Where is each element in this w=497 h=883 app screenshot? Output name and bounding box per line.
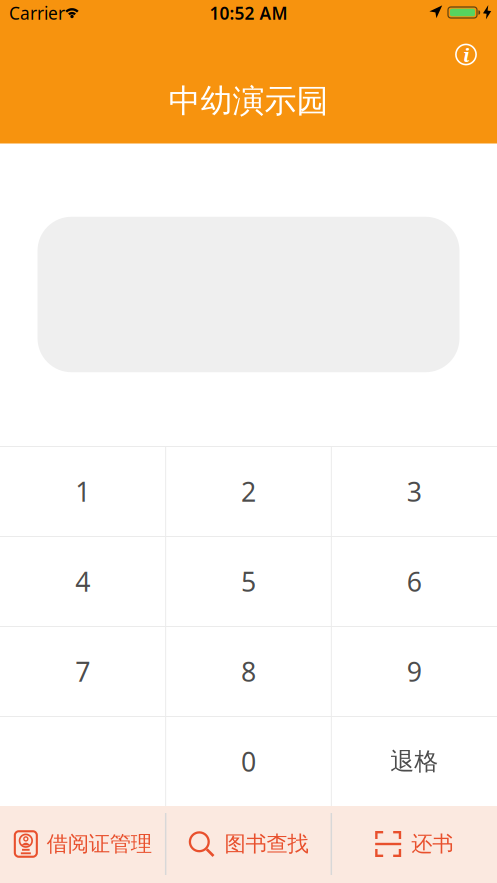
staticText: 6 — [407, 564, 422, 599]
button[interactable]: 1 — [0, 446, 166, 536]
button[interactable]: 7 — [0, 626, 166, 716]
staticText: 9 — [407, 654, 422, 689]
button[interactable]: 6 — [331, 536, 497, 626]
button[interactable]: 4 — [0, 536, 166, 626]
button[interactable]: 退格 — [331, 716, 497, 806]
staticText: 3 — [407, 474, 422, 509]
button[interactable]: 9 — [331, 626, 497, 716]
staticText: 2 — [241, 474, 256, 509]
button[interactable]: 还书 — [332, 805, 496, 882]
staticText: 借阅证管理 — [47, 831, 152, 857]
staticText: 10:52 AM — [209, 1, 287, 24]
button[interactable]: 5 — [166, 536, 331, 626]
staticText: 0 — [241, 744, 256, 779]
staticText: Carrier — [9, 1, 65, 24]
button[interactable]: 借阅证管理 — [1, 805, 165, 882]
staticText: 退格 — [390, 747, 438, 776]
button[interactable]: 8 — [166, 626, 331, 716]
button[interactable]: 图书查找 — [167, 805, 330, 882]
staticText: 5 — [241, 564, 256, 599]
staticText: 还书 — [411, 831, 453, 857]
staticText: 中幼演示园 — [168, 81, 328, 121]
staticText: i — [463, 42, 470, 67]
staticText: 图书查找 — [224, 831, 308, 857]
staticText: 4 — [75, 564, 90, 599]
button[interactable]: 3 — [331, 446, 497, 536]
staticText: 1 — [75, 474, 90, 509]
button[interactable]: 2 — [166, 446, 331, 536]
button[interactable]: 0 — [166, 716, 331, 806]
button[interactable]: Info — [455, 43, 477, 65]
staticText: 7 — [75, 654, 90, 689]
staticText: 8 — [241, 654, 256, 689]
